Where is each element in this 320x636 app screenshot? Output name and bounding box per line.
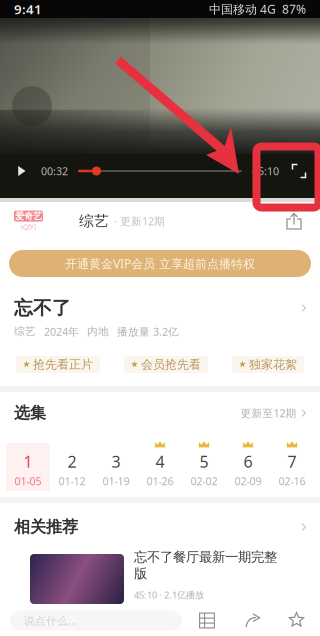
staticText: 中国移动 4G 87% xyxy=(209,1,306,17)
button[interactable]: 5 xyxy=(182,443,226,491)
staticText: 01-26 xyxy=(146,474,173,488)
staticText: 01-05 xyxy=(14,474,41,488)
button[interactable]: 会员抢先看 xyxy=(124,356,208,373)
button[interactable]: 1 xyxy=(6,443,50,491)
staticText: 7 xyxy=(287,451,296,472)
staticText: 4 xyxy=(155,451,164,472)
staticText: 3 xyxy=(111,451,120,472)
staticText: 忘不了餐厅最新一期完整版 xyxy=(134,549,277,582)
staticText: 抢先看正片 xyxy=(33,357,93,372)
staticText: 播放量 3.2亿 xyxy=(117,324,179,339)
button[interactable]: 4 xyxy=(138,443,182,491)
staticText: 爱奇艺 xyxy=(15,210,42,222)
staticText: 02-16 xyxy=(278,474,305,488)
button[interactable]: 相关推荐 xyxy=(0,516,320,538)
staticText: 45:10 · 2.1亿播放 xyxy=(134,589,204,601)
button[interactable]: 抢先看正片 xyxy=(16,356,100,373)
staticText: 6 xyxy=(243,451,252,472)
staticText: 2 xyxy=(67,451,76,472)
staticText: 45:10 xyxy=(252,164,279,178)
button[interactable]: 独家花絮 xyxy=(232,356,304,373)
button[interactable]: 忘不了餐厅最新一期完整版 xyxy=(0,554,320,604)
staticText: iQIYI xyxy=(21,223,36,231)
button[interactable]: Episode list xyxy=(194,607,220,633)
staticText: 1 xyxy=(23,451,32,472)
button[interactable]: 3 xyxy=(94,443,138,491)
staticText: 01-19 xyxy=(102,474,129,488)
button[interactable]: Favorite xyxy=(284,607,310,633)
staticText: 选集 xyxy=(14,403,46,423)
button[interactable]: Full screen xyxy=(287,159,311,183)
button[interactable]: Play xyxy=(9,159,33,183)
button[interactable]: 忘不了 xyxy=(0,299,320,317)
staticText: 忘不了 xyxy=(14,296,71,319)
staticText: 会员抢先看 xyxy=(141,357,201,372)
staticText: 说点什么... xyxy=(24,613,77,628)
button[interactable]: 选集 xyxy=(0,401,320,425)
staticText: 02-02 xyxy=(190,474,217,488)
staticText: 综艺 xyxy=(79,212,109,230)
button[interactable]: iQIYI xyxy=(14,210,43,232)
staticText: 更新至12期 xyxy=(240,406,296,420)
staticText: 综艺 xyxy=(14,325,36,338)
button[interactable]: Share xyxy=(240,607,266,633)
staticText: 5 xyxy=(199,451,208,472)
button[interactable]: 说点什么... xyxy=(10,610,182,630)
staticText: 相关推荐 xyxy=(14,517,78,537)
button[interactable]: Share xyxy=(282,209,306,233)
staticText: 9:41 xyxy=(14,0,42,18)
staticText: 独家花絮 xyxy=(249,357,297,372)
staticText: 01-12 xyxy=(58,474,85,488)
staticText: 内地 xyxy=(87,325,109,338)
button[interactable]: 6 xyxy=(226,443,270,491)
button[interactable]: 7 xyxy=(270,443,314,491)
button[interactable]: 2 xyxy=(50,443,94,491)
button[interactable]: 开通黄金VIP会员 立享超前点播特权 xyxy=(9,250,311,277)
staticText: · 更新12期 xyxy=(114,214,165,228)
staticText: 2024年 xyxy=(44,324,79,339)
staticText: 02-09 xyxy=(234,474,261,488)
staticText: 开通黄金VIP会员 立享超前点播特权 xyxy=(65,255,255,271)
staticText: 00:32 xyxy=(41,164,68,178)
